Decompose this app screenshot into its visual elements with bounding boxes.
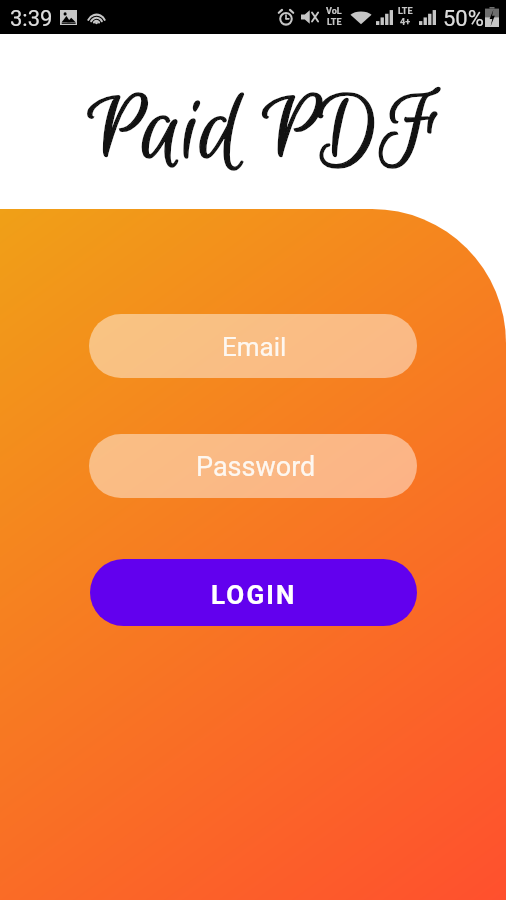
staticText: Paid PDF — [9, 74, 506, 195]
button[interactable]: Password — [89, 434, 417, 498]
staticText: 50% — [443, 6, 484, 32]
staticText: LTE — [398, 6, 413, 17]
staticText: Email — [222, 332, 287, 362]
staticText: LOGIN — [211, 580, 297, 610]
button[interactable]: Email — [89, 314, 417, 378]
button[interactable]: LOGIN — [90, 559, 417, 626]
staticText: LTE — [327, 17, 342, 28]
staticText: Paid PDF — [9, 74, 506, 195]
staticText: Password — [196, 451, 316, 483]
staticText: 3:39 — [10, 6, 53, 32]
staticText: VoL — [326, 6, 342, 17]
staticText: 4+ — [400, 17, 411, 28]
